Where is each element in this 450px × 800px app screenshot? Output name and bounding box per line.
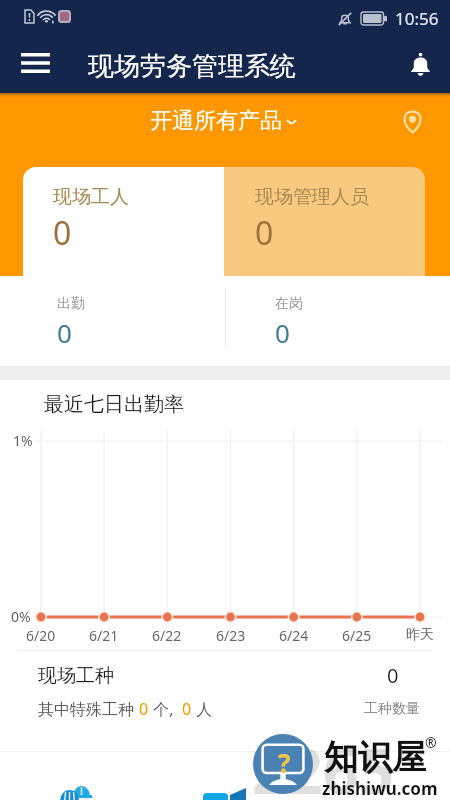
staticText: 现场管理人员 [255,185,369,209]
button[interactable]: 现场管理人员 [224,167,425,276]
staticText: 6/25 [342,626,372,645]
button[interactable]: Notifications [400,44,440,84]
staticText: 0 [53,211,72,255]
staticText: 开通所有产品 [150,107,282,135]
staticText: 昨天 [406,626,434,644]
staticText: 出勤 [57,295,85,313]
staticText: 1% [13,431,33,450]
staticText: 6/22 [152,626,182,645]
staticText: 现场工种 [38,664,114,688]
staticText: 其中特殊工种 [38,698,139,720]
staticText: ® [425,733,437,752]
staticText: 10:56 [395,7,439,30]
staticText: 0 [255,211,274,255]
button[interactable]: 现场工人 [23,167,224,276]
button[interactable]: Menu [10,43,60,83]
staticText: 0% [11,607,31,626]
staticText: 0 [139,698,149,720]
staticText: 现场劳务管理系统 [88,50,296,83]
staticText: 2265 [252,728,394,800]
staticText: 人 [192,698,213,720]
staticText: 0 [275,315,290,350]
staticText: 0 [387,662,399,689]
staticText: 知识屋 [324,736,426,779]
button[interactable]: 现场工种 [0,651,450,697]
button[interactable]: 开通所有产品 [150,107,297,135]
staticText: zhishiwu.com [322,777,438,800]
staticText: 工种数量 [364,700,420,718]
staticText: 个, [149,698,182,720]
staticText: 0 [57,315,72,350]
staticText: 6/21 [89,626,119,645]
button[interactable]: 在岗 [225,276,450,366]
staticText: 6/20 [26,626,56,645]
staticText: 现场工人 [53,185,129,209]
staticText: ? [278,745,291,780]
staticText: 在岗 [275,295,303,313]
button[interactable]: 出勤 [0,276,225,366]
button[interactable]: Location [395,105,429,139]
staticText: 最近七日出勤率 [44,392,184,417]
staticText: 6/24 [279,626,309,645]
staticText: 6/23 [216,626,246,645]
staticText: 0 [182,698,192,720]
